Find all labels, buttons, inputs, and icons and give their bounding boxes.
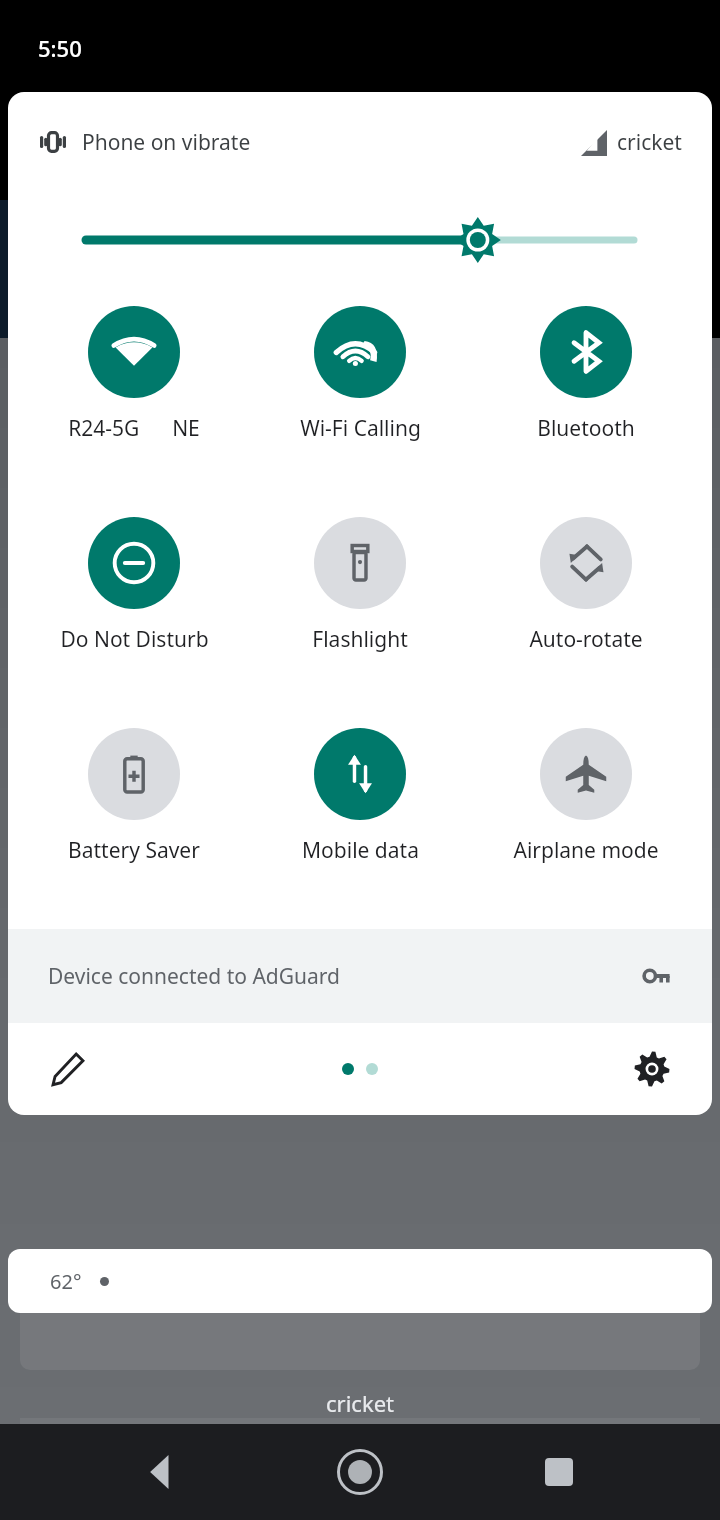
staticText: cricket <box>617 128 682 157</box>
staticText: Phone on vibrate <box>82 128 251 157</box>
button[interactable]: Back <box>123 1434 199 1510</box>
button[interactable]: Device connected to AdGuard <box>8 929 712 1023</box>
button[interactable]: Bluetooth <box>476 302 696 447</box>
staticText: 5:50 <box>38 33 82 63</box>
button[interactable]: Signal <box>581 128 682 157</box>
button[interactable]: Home <box>322 1434 398 1510</box>
button[interactable]: R24-5G NE <box>24 302 244 447</box>
staticText: Mobile data <box>302 836 419 865</box>
staticText: Auto-rotate <box>529 625 643 654</box>
button[interactable]: Settings <box>626 1043 678 1095</box>
staticText: 62° <box>50 1268 82 1295</box>
button[interactable]: Airplane mode <box>476 724 696 869</box>
button[interactable]: Wi-Fi Calling <box>250 302 470 447</box>
staticText: Flashlight <box>312 625 408 654</box>
staticText: R24-5G NE <box>68 414 200 443</box>
staticText: Battery Saver <box>68 836 200 865</box>
other: Phone on vibrate <box>38 127 68 157</box>
button[interactable]: Do Not Disturb <box>24 513 244 658</box>
button[interactable]: Auto-rotate <box>476 513 696 658</box>
button[interactable]: Flashlight <box>250 513 470 658</box>
button[interactable]: Recent apps <box>521 1434 597 1510</box>
button[interactable]: Edit tiles <box>42 1043 94 1095</box>
button[interactable]: Mobile data <box>250 724 470 869</box>
staticText: Do Not Disturb <box>60 625 209 654</box>
staticText: Device connected to AdGuard <box>48 962 340 991</box>
button[interactable]: Phone on vibrate <box>38 127 251 157</box>
staticText: Wi-Fi Calling <box>300 414 421 443</box>
button[interactable]: 62° <box>8 1249 712 1313</box>
staticText: cricket <box>0 1388 720 1418</box>
staticText: Bluetooth <box>537 414 635 443</box>
button[interactable]: Brightness <box>8 192 712 288</box>
staticText: Airplane mode <box>513 836 659 865</box>
button[interactable]: Battery Saver <box>24 724 244 869</box>
other: Signal <box>581 130 607 156</box>
